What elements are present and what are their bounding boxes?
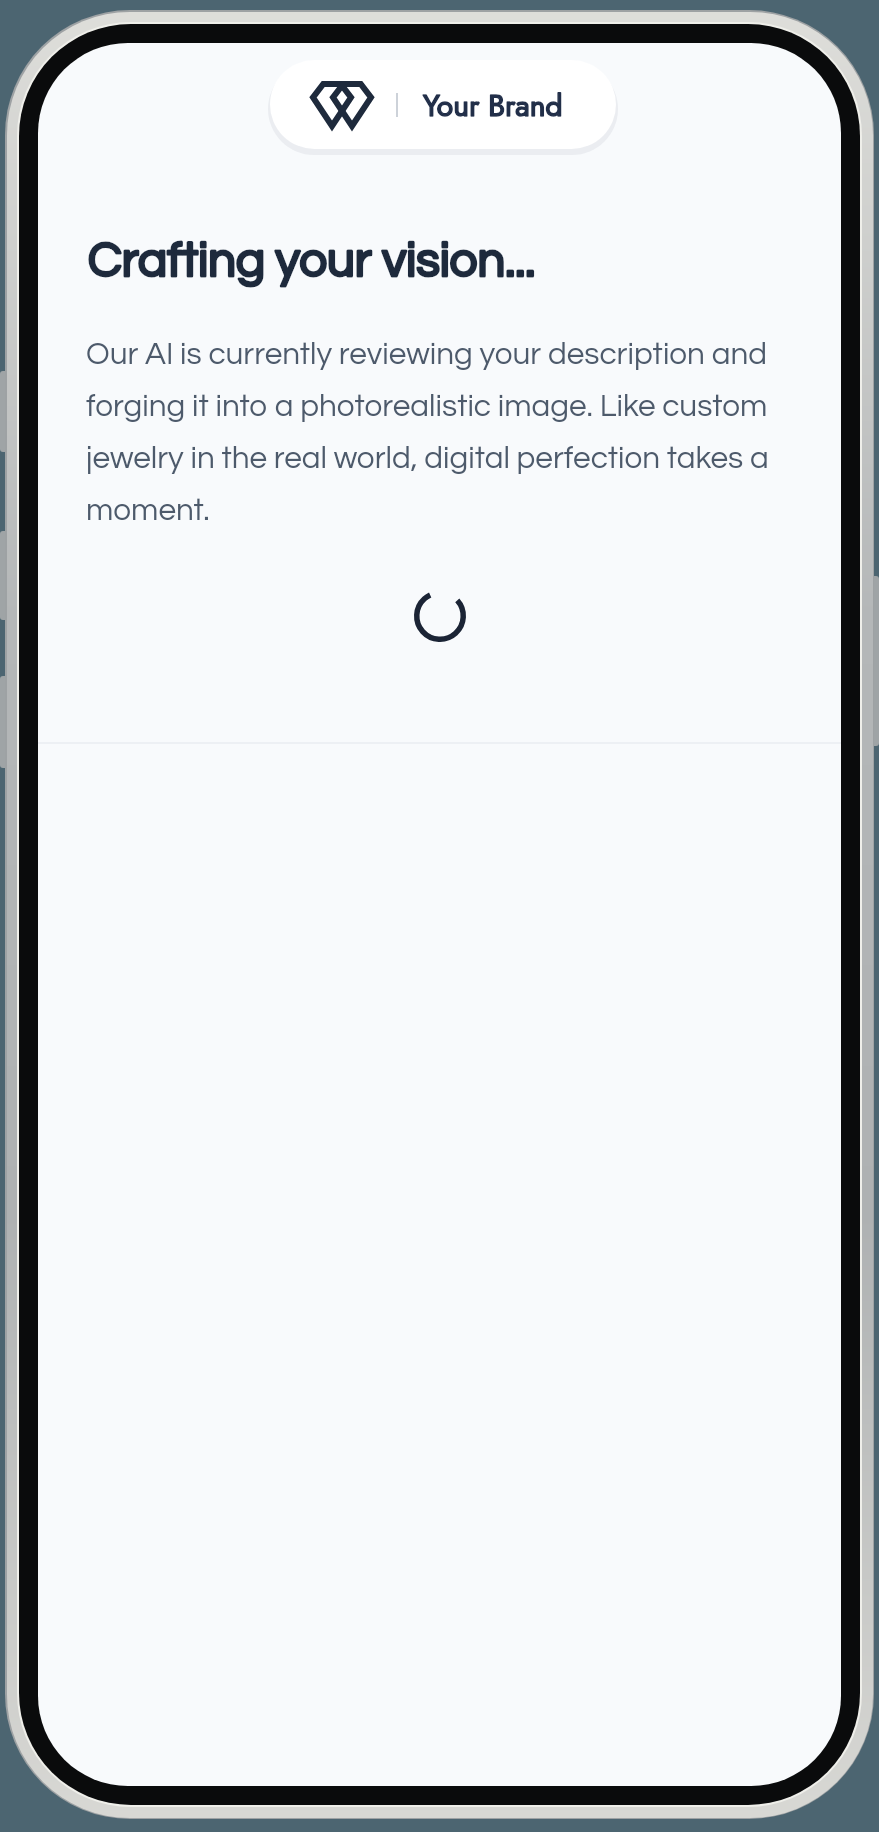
staticText: Our AI is currently reviewing your descr… [86, 338, 767, 370]
staticText: forging it into a photorealistic image. … [86, 390, 768, 422]
staticText: Your Brand [423, 84, 563, 127]
staticText: jewelry in the real world, digital perfe… [86, 442, 769, 474]
staticText: Crafting your vision... [88, 236, 536, 286]
staticText: moment. [86, 494, 210, 526]
button[interactable]: Your Brand [270, 60, 616, 149]
staticText: Your Brand [423, 84, 563, 127]
staticText: Crafting your vision... [88, 236, 536, 286]
